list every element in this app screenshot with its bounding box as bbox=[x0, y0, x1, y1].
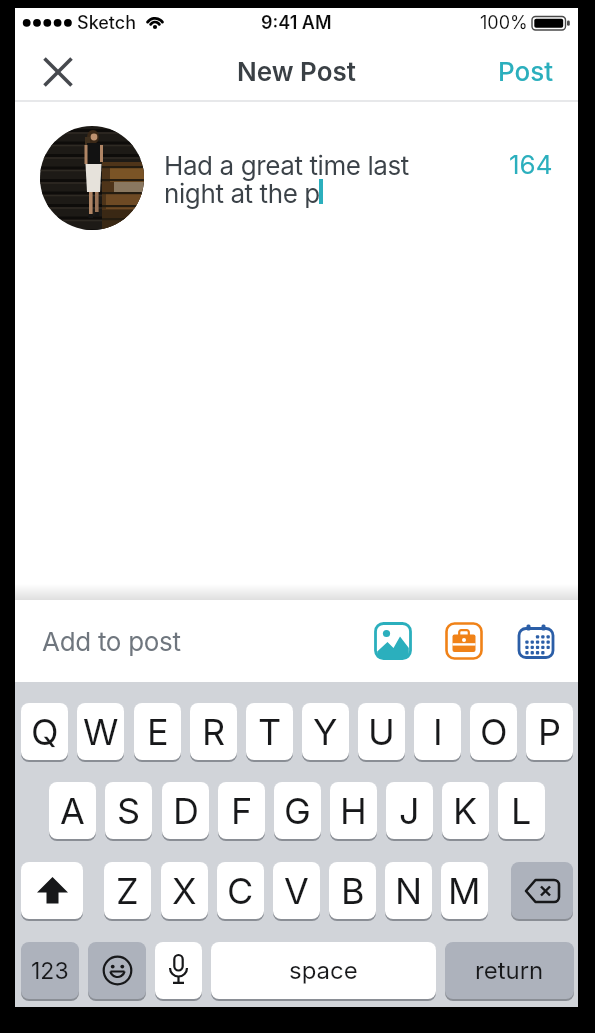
button[interactable]: H bbox=[330, 782, 377, 839]
button[interactable] bbox=[155, 942, 202, 999]
button[interactable] bbox=[88, 942, 146, 999]
staticText: return bbox=[475, 956, 544, 985]
button[interactable]: Y bbox=[302, 703, 349, 760]
staticText: D bbox=[173, 789, 199, 833]
staticText: O bbox=[480, 710, 508, 754]
button[interactable]: 123 bbox=[21, 942, 79, 999]
staticText: 100% bbox=[480, 12, 528, 34]
button[interactable]: Z bbox=[104, 862, 151, 919]
button[interactable]: space bbox=[211, 942, 436, 999]
button[interactable] bbox=[445, 622, 483, 660]
button[interactable]: I bbox=[414, 703, 461, 760]
staticText: R bbox=[202, 710, 226, 754]
button[interactable]: L bbox=[498, 782, 545, 839]
staticText: L bbox=[511, 789, 532, 833]
button[interactable]: G bbox=[274, 782, 321, 839]
staticText: H bbox=[340, 789, 367, 833]
staticText: Sketch bbox=[77, 12, 137, 34]
button[interactable]: C bbox=[217, 862, 264, 919]
button[interactable]: R bbox=[190, 703, 237, 760]
staticText: E bbox=[147, 710, 169, 754]
staticText: New Post bbox=[237, 56, 356, 87]
button[interactable]: Post bbox=[428, 55, 554, 87]
button[interactable]: U bbox=[358, 703, 405, 760]
staticText: space bbox=[289, 956, 358, 985]
staticText: F bbox=[231, 789, 253, 833]
staticText: G bbox=[284, 789, 311, 833]
staticText: Add to post bbox=[42, 626, 181, 657]
button[interactable]: S bbox=[105, 782, 152, 839]
staticText: Q bbox=[31, 710, 59, 754]
staticText: K bbox=[453, 789, 478, 833]
button[interactable]: E bbox=[134, 703, 181, 760]
staticText: B bbox=[341, 869, 365, 913]
staticText: Post bbox=[498, 56, 554, 87]
staticText: V bbox=[284, 869, 309, 913]
button[interactable]: return bbox=[445, 942, 574, 999]
staticText: 123 bbox=[31, 957, 69, 985]
button[interactable] bbox=[42, 56, 74, 88]
staticText: 9:41 AM bbox=[261, 12, 332, 34]
button[interactable]: M bbox=[441, 862, 488, 919]
staticText: Y bbox=[313, 710, 338, 754]
staticText: I bbox=[433, 710, 443, 754]
staticText: J bbox=[399, 789, 420, 833]
button[interactable] bbox=[517, 622, 555, 660]
staticText: 164 bbox=[509, 149, 553, 179]
staticText: C bbox=[227, 869, 254, 913]
button[interactable]: D bbox=[162, 782, 209, 839]
staticText: M bbox=[448, 869, 481, 913]
button[interactable] bbox=[511, 862, 573, 919]
button[interactable]: F bbox=[218, 782, 265, 839]
button[interactable]: A bbox=[49, 782, 96, 839]
button[interactable]: V bbox=[273, 862, 320, 919]
staticText: S bbox=[117, 789, 141, 833]
button[interactable]: N bbox=[385, 862, 432, 919]
button[interactable] bbox=[374, 622, 412, 660]
button[interactable]: T bbox=[246, 703, 293, 760]
staticText: Z bbox=[116, 869, 139, 913]
button[interactable]: P bbox=[526, 703, 573, 760]
button[interactable]: W bbox=[77, 703, 124, 760]
button[interactable]: Q bbox=[21, 703, 68, 760]
staticText: T bbox=[258, 710, 282, 754]
button[interactable]: B bbox=[329, 862, 376, 919]
staticText: A bbox=[60, 789, 85, 833]
staticText: W bbox=[83, 710, 119, 754]
staticText: P bbox=[538, 710, 561, 754]
button[interactable]: J bbox=[386, 782, 433, 839]
button[interactable]: K bbox=[442, 782, 489, 839]
button[interactable]: X bbox=[161, 862, 208, 919]
staticText: Had a great time last night at the p bbox=[164, 150, 409, 209]
staticText: U bbox=[368, 710, 395, 754]
button[interactable]: O bbox=[470, 703, 517, 760]
staticText: X bbox=[172, 869, 197, 913]
staticText: N bbox=[395, 869, 423, 913]
button[interactable] bbox=[21, 862, 83, 919]
